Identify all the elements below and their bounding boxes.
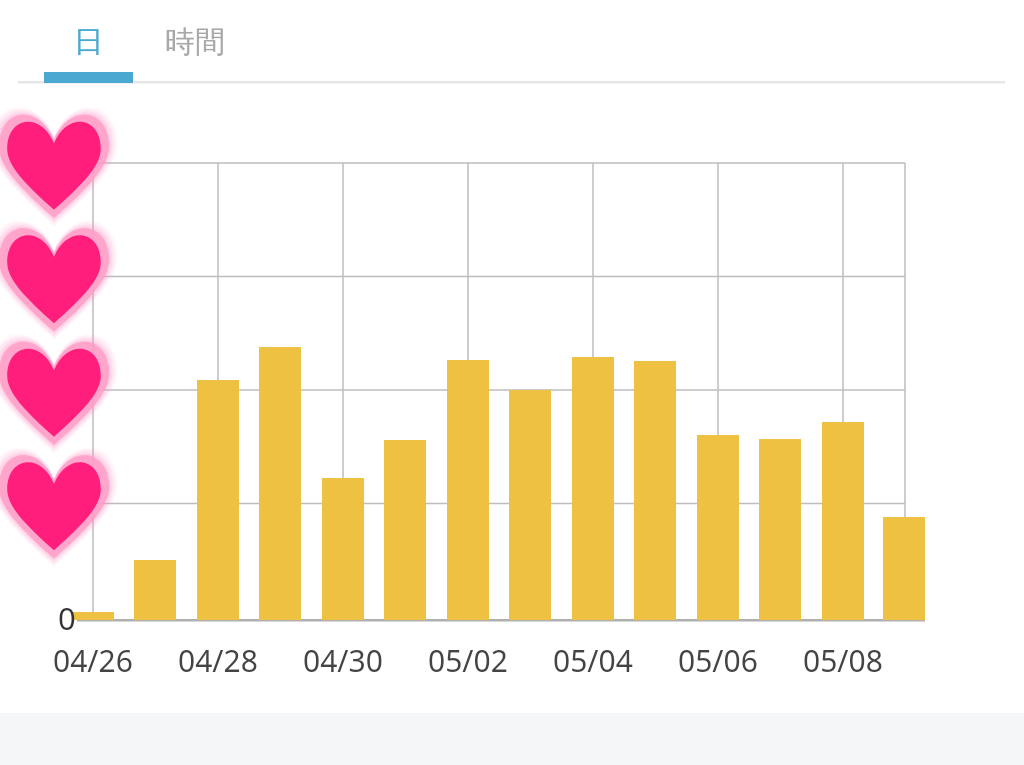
button[interactable] xyxy=(140,0,250,83)
button[interactable] xyxy=(44,0,133,83)
